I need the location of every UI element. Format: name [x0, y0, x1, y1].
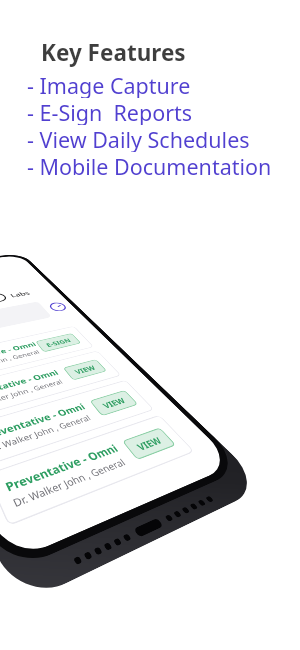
staticText: Dr. Walker John , General — [0, 348, 41, 375]
button[interactable]: VIEW — [122, 427, 176, 460]
staticText: Key Features — [41, 37, 186, 68]
button[interactable]: VIEW — [63, 359, 107, 381]
staticText: Dr. Walker John , General — [0, 413, 93, 455]
staticText: - Image Capture — [27, 71, 191, 98]
staticText: Preventative - Omni — [2, 441, 121, 494]
button[interactable]: Preventative - Omni — [0, 350, 122, 421]
staticText: Dr. Walker John , General — [10, 456, 128, 510]
button[interactable]: Preventative - Omni — [0, 415, 195, 526]
staticText: - E-Sign Reports — [27, 98, 193, 125]
button[interactable]: E-SIGN — [35, 333, 81, 352]
button[interactable]: VIEW — [89, 390, 138, 416]
staticText: Preventative - Omni — [0, 367, 61, 401]
button[interactable]: Preventative - Omni — [0, 326, 94, 383]
button[interactable]: SEARCH — [0, 301, 52, 342]
staticText: Preventative - Omni — [0, 400, 88, 442]
staticText: Preventative - Omni — [0, 340, 38, 367]
staticText: E-SIGN — [44, 337, 73, 348]
staticText: VIEW — [133, 434, 165, 453]
staticText: VIEW — [72, 363, 98, 376]
staticText: VIEW — [100, 395, 128, 410]
button[interactable]: Preventative - Omni — [0, 380, 155, 467]
staticText: Dr. Walker John , General — [0, 378, 64, 411]
staticText: - View Daily Schedules — [27, 125, 250, 152]
button[interactable]: Recent — [47, 301, 69, 312]
staticText: - Mobile Documentation — [27, 152, 272, 179]
staticText: Labs — [8, 290, 32, 299]
